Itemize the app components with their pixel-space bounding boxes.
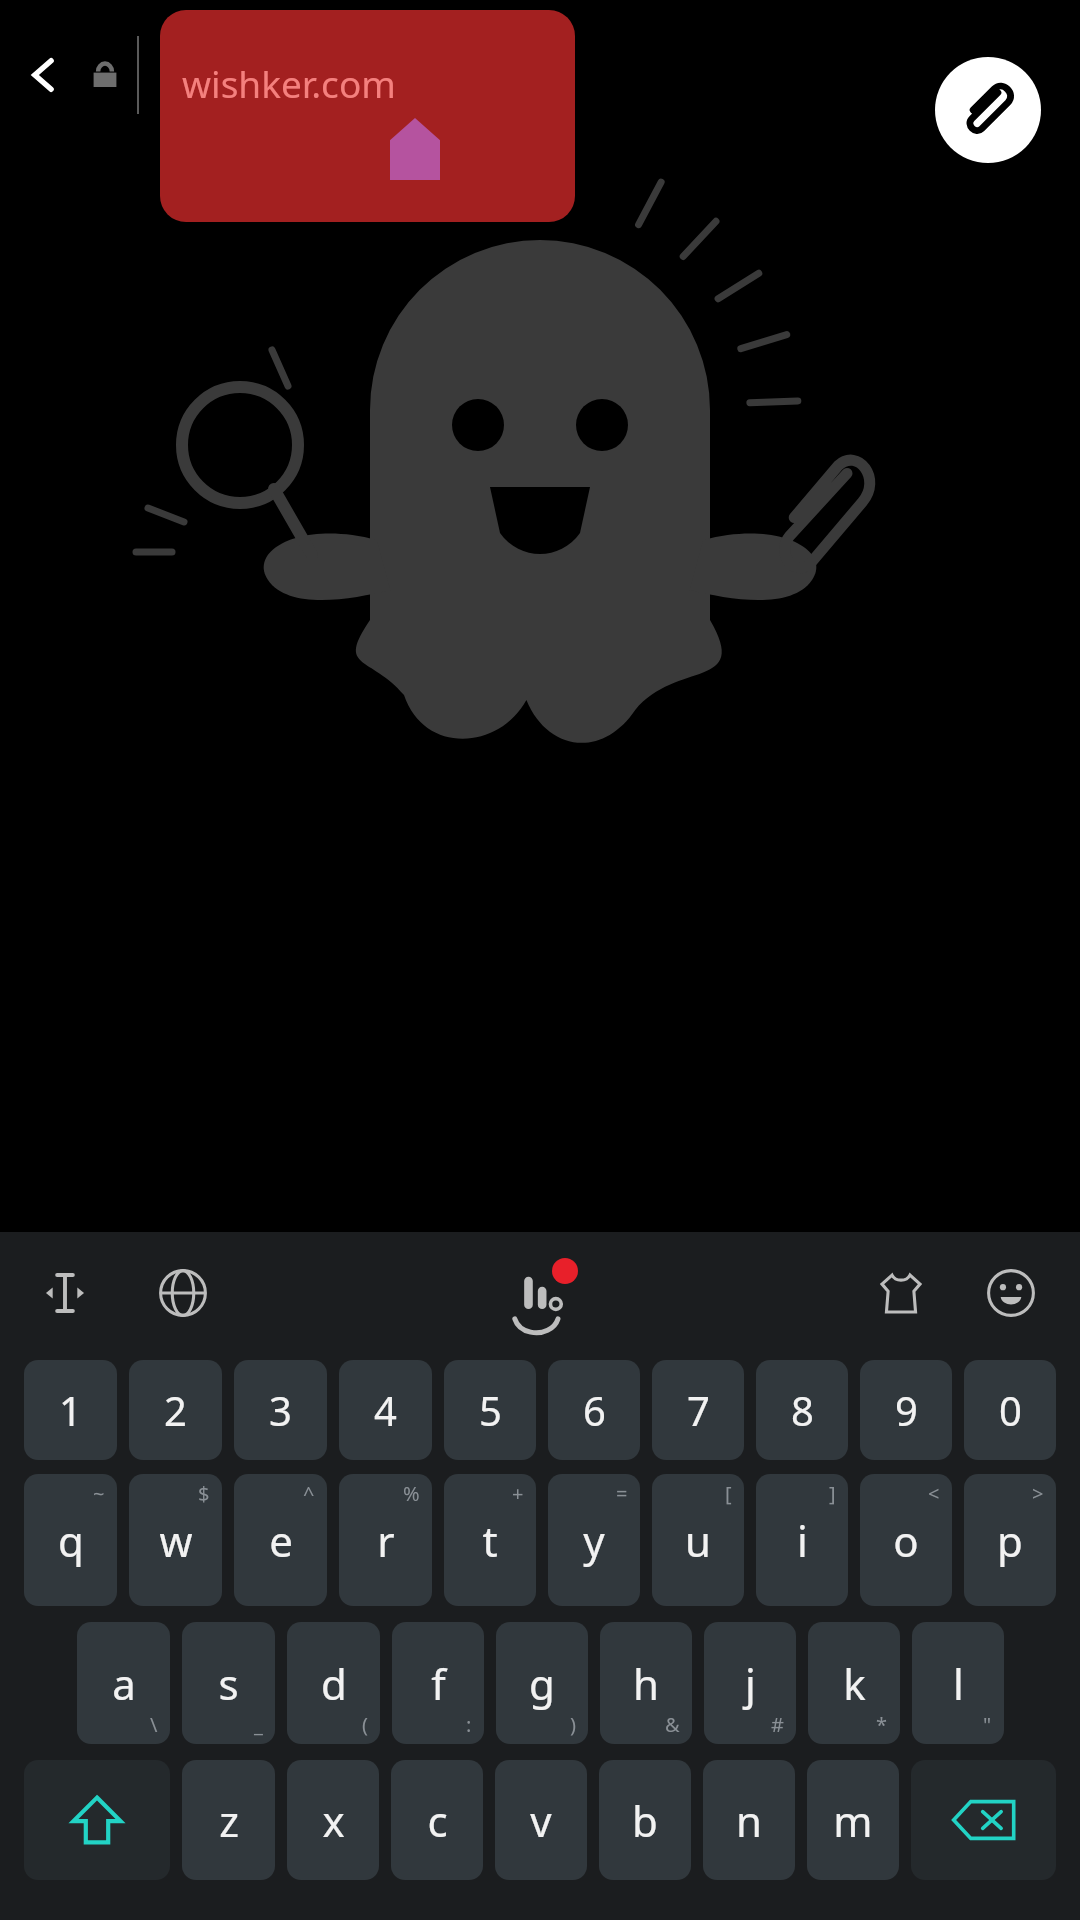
staticText: % [403,1480,420,1507]
staticText: ( [362,1711,368,1738]
staticText: b [632,1792,658,1849]
staticText: s [218,1655,239,1712]
staticText: l [953,1655,964,1712]
button[interactable]: u [652,1474,744,1606]
staticText: x [322,1792,345,1849]
button[interactable]: a [77,1622,170,1744]
button[interactable]: Themes [868,1260,934,1326]
staticText: ^ [303,1480,315,1507]
staticText: _ [254,1711,263,1738]
staticText: ~ [93,1480,105,1507]
button[interactable]: e [234,1474,327,1606]
button[interactable]: Keyboard settings [500,1258,580,1338]
staticText: r [377,1512,395,1569]
button[interactable]: 7 [652,1360,744,1460]
button[interactable]: z [182,1760,275,1880]
staticText: k [843,1655,866,1712]
button[interactable]: Attach [935,57,1041,163]
button[interactable]: 2 [129,1360,222,1460]
button[interactable]: s [182,1622,275,1744]
button[interactable]: y [548,1474,640,1606]
staticText: 2 [164,1383,187,1437]
button[interactable]: wishker.com [160,10,575,222]
button[interactable]: 9 [860,1360,952,1460]
staticText: f [431,1655,446,1712]
button[interactable]: k [808,1622,900,1744]
staticText: z [219,1792,239,1849]
button[interactable]: Emoji [978,1260,1044,1326]
staticText: w [159,1512,193,1569]
staticText: a [112,1655,136,1712]
button[interactable]: q [24,1474,117,1606]
staticText: n [736,1792,762,1849]
staticText: 8 [791,1383,814,1437]
button[interactable]: l [912,1622,1004,1744]
staticText: h [633,1655,659,1712]
other: Secure [78,48,132,102]
staticText: e [269,1512,293,1569]
button[interactable]: m [807,1760,899,1880]
staticText: ] [829,1480,836,1507]
staticText: u [685,1512,711,1569]
button[interactable]: Shift [24,1760,170,1880]
button[interactable]: 6 [548,1360,640,1460]
button[interactable]: n [703,1760,795,1880]
button[interactable]: 8 [756,1360,848,1460]
staticText: y [583,1512,605,1569]
button[interactable]: Back [14,44,76,106]
staticText: j [745,1655,756,1712]
staticText: t [482,1512,498,1569]
staticText: " [983,1711,992,1738]
staticText: c [427,1792,448,1849]
staticText: 5 [479,1383,502,1437]
button[interactable]: w [129,1474,222,1606]
button[interactable]: c [391,1760,483,1880]
staticText: 3 [269,1383,292,1437]
staticText: 1 [59,1383,82,1437]
staticText: wishker.com [182,58,396,108]
button[interactable]: Backspace [911,1760,1056,1880]
staticText: 0 [999,1383,1022,1437]
button[interactable]: 0 [964,1360,1056,1460]
button[interactable]: 5 [444,1360,536,1460]
staticText: p [997,1512,1023,1569]
button[interactable]: 3 [234,1360,327,1460]
button[interactable]: Change language [150,1260,216,1326]
staticText: 9 [895,1383,918,1437]
button[interactable]: j [704,1622,796,1744]
button[interactable]: d [287,1622,380,1744]
staticText: + [512,1480,524,1507]
button[interactable]: 1 [24,1360,117,1460]
staticText: 4 [374,1383,397,1437]
button[interactable]: 4 [339,1360,432,1460]
button[interactable]: b [599,1760,691,1880]
staticText: 6 [583,1383,606,1437]
staticText: \ [150,1711,158,1738]
staticText: > [1032,1480,1044,1507]
button[interactable]: r [339,1474,432,1606]
staticText: * [876,1711,888,1738]
button[interactable]: h [600,1622,692,1744]
staticText: o [893,1512,919,1569]
staticText: & [665,1711,680,1738]
staticText: ) [570,1711,576,1738]
staticText: q [58,1512,84,1569]
button[interactable]: t [444,1474,536,1606]
button[interactable]: Move cursor [32,1260,98,1326]
staticText: i [797,1512,808,1569]
staticText: 7 [687,1383,710,1437]
staticText: g [529,1655,555,1712]
button[interactable]: x [287,1760,379,1880]
button[interactable]: o [860,1474,952,1606]
button[interactable]: f [392,1622,484,1744]
staticText: = [616,1480,628,1507]
button[interactable]: i [756,1474,848,1606]
staticText: # [771,1711,784,1738]
staticText: $ [198,1480,210,1507]
staticText: < [928,1480,940,1507]
button[interactable]: g [496,1622,588,1744]
staticText: : [466,1711,472,1738]
staticText: m [833,1792,873,1849]
button[interactable]: v [495,1760,587,1880]
button[interactable]: p [964,1474,1056,1606]
